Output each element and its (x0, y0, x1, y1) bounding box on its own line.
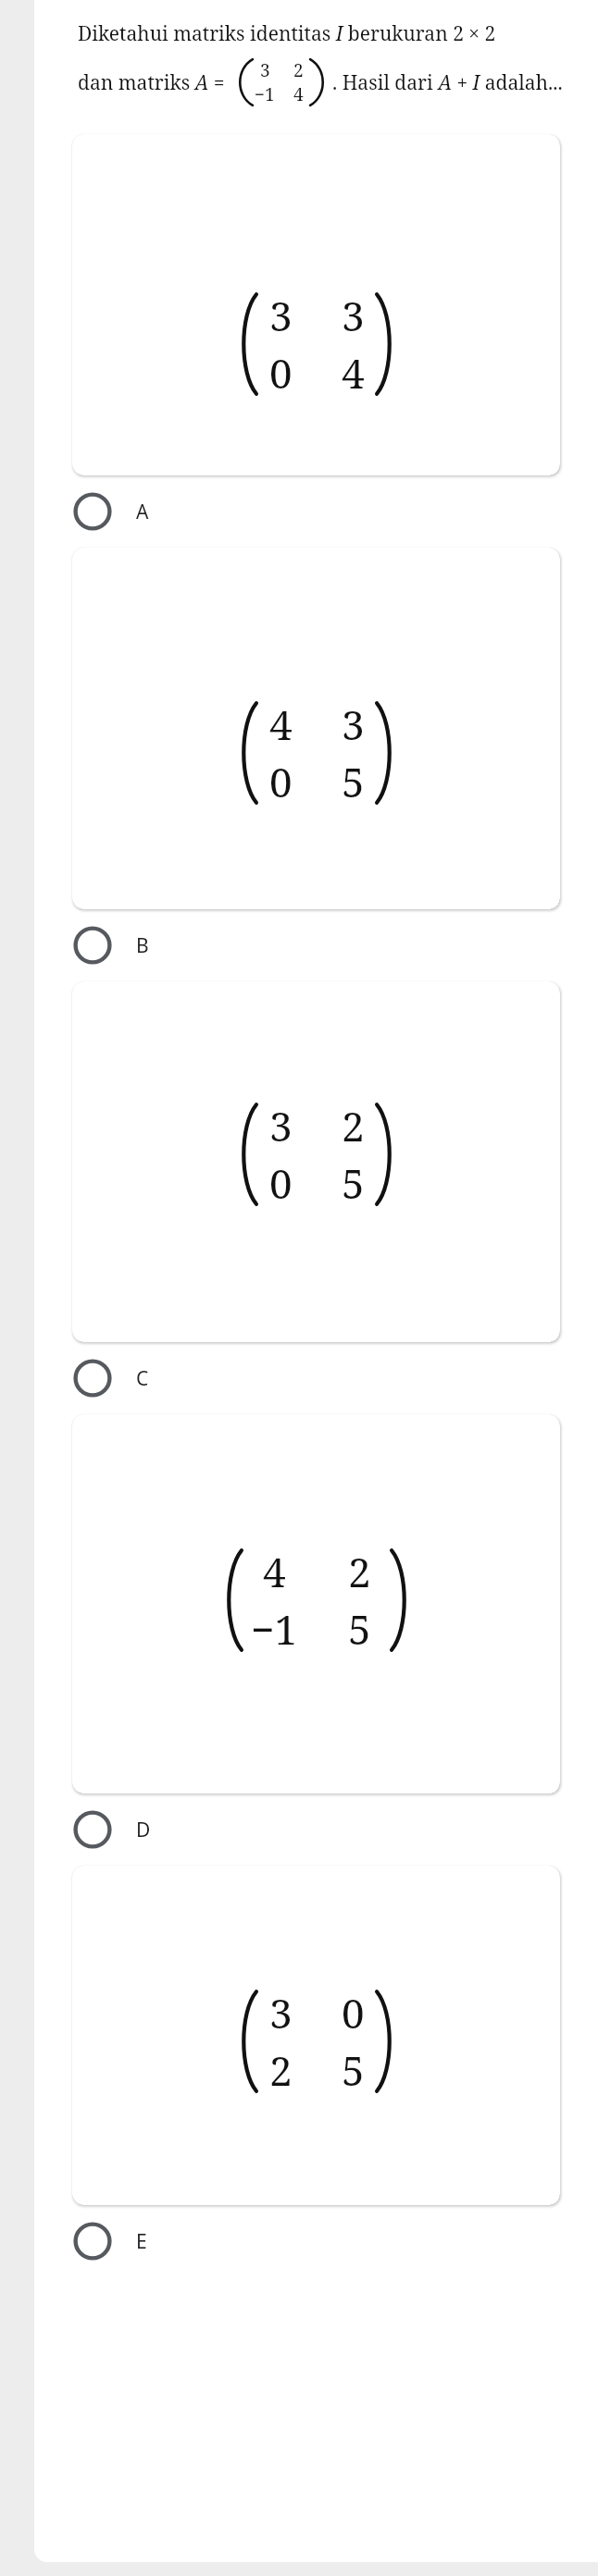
button[interactable]: 3 (72, 134, 560, 475)
staticText: . Hasil dari A + I adalah... (332, 69, 563, 96)
staticText: C (136, 1365, 149, 1392)
staticText: 5 (342, 1155, 365, 1211)
staticText: dan matriks A = (78, 69, 230, 96)
staticText: 5 (342, 2042, 365, 2098)
staticText: 3 (260, 58, 270, 82)
staticText: A (136, 499, 149, 525)
staticText: D (136, 1817, 151, 1843)
staticText: 0 (269, 1155, 293, 1211)
staticText: Diketahui matriks identitas I berukuran … (78, 20, 496, 47)
staticText: 5 (342, 754, 365, 809)
button[interactable]: 3 (72, 981, 560, 1342)
other: Pilih opsi C (73, 1359, 112, 1398)
staticText: 3 (342, 696, 365, 752)
staticText: B (136, 932, 149, 959)
staticText: 0 (269, 345, 293, 401)
staticText: 3 (269, 1985, 293, 2040)
staticText: 2 (293, 58, 304, 82)
staticText: −1 (255, 82, 275, 106)
staticText: 0 (269, 754, 293, 809)
button[interactable]: Pilih opsi E (34, 2205, 598, 2277)
button[interactable]: 4 (72, 548, 560, 909)
staticText: 4 (293, 82, 304, 106)
other: Pilih opsi B (73, 926, 112, 965)
button[interactable]: Pilih opsi A (34, 475, 598, 548)
staticText: 2 (348, 1544, 371, 1599)
button[interactable]: Pilih opsi C (34, 1342, 598, 1414)
staticText: 3 (342, 288, 365, 343)
button[interactable]: 4 (72, 1414, 560, 1793)
staticText: 2 (269, 2042, 293, 2098)
staticText: 5 (348, 1601, 371, 1657)
staticText: 4 (269, 696, 293, 752)
other: Pilih opsi E (73, 2222, 112, 2261)
staticText: 0 (342, 1985, 365, 2040)
other: Pilih opsi A (73, 492, 112, 531)
button[interactable]: Pilih opsi B (34, 909, 598, 981)
other: Pilih opsi D (73, 1810, 112, 1849)
staticText: 3 (269, 1098, 293, 1153)
staticText: 3 (269, 288, 293, 343)
staticText: 2 (342, 1098, 365, 1153)
staticText: 4 (263, 1544, 286, 1599)
staticText: −1 (251, 1601, 298, 1657)
staticText: E (136, 2228, 147, 2255)
staticText: 4 (342, 345, 365, 401)
button[interactable]: Pilih opsi D (34, 1793, 598, 1866)
button[interactable]: 3 (72, 1866, 560, 2205)
